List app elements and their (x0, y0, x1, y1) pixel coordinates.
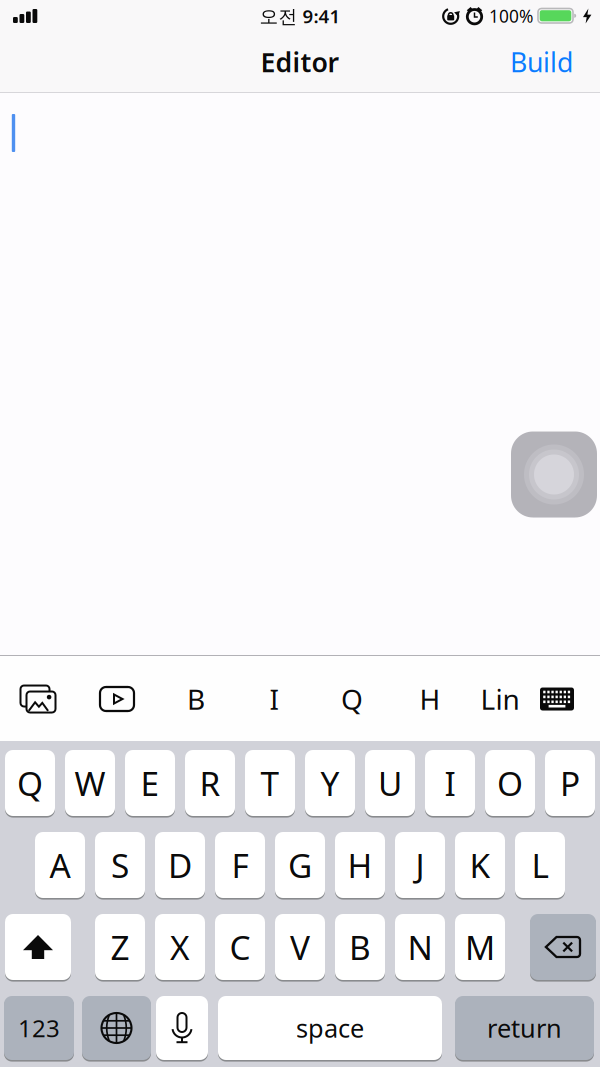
button[interactable]: Insert video (95, 669, 139, 729)
button[interactable]: H (335, 832, 385, 898)
button[interactable]: W (65, 750, 115, 816)
staticText: W (74, 761, 105, 805)
button[interactable]: Z (95, 914, 145, 980)
button[interactable]: O (485, 750, 535, 816)
button[interactable]: C (215, 914, 265, 980)
staticText: I (269, 680, 278, 718)
button[interactable]: D (155, 832, 205, 898)
button[interactable]: Insert photo (16, 669, 60, 729)
button[interactable]: Numbers (4, 996, 74, 1060)
staticText: Q (341, 680, 363, 718)
staticText: U (378, 761, 402, 805)
button[interactable]: X (155, 914, 205, 980)
button[interactable]: B (335, 914, 385, 980)
staticText: B (349, 925, 371, 969)
button[interactable]: F (215, 832, 265, 898)
button[interactable]: return (455, 996, 594, 1060)
button[interactable]: M (455, 914, 505, 980)
button[interactable]: K (455, 832, 505, 898)
staticText: H (419, 680, 440, 718)
staticText: Editor (260, 44, 339, 80)
staticText: M (465, 925, 495, 969)
staticText: Q (17, 761, 43, 805)
staticText: Lin (480, 680, 519, 718)
button[interactable]: Italic (252, 669, 296, 729)
button[interactable]: T (245, 750, 295, 816)
button[interactable]: U (365, 750, 415, 816)
button[interactable]: G (275, 832, 325, 898)
staticText: K (469, 843, 490, 887)
staticText: G (288, 843, 312, 887)
button[interactable]: Shift (5, 914, 71, 980)
staticText: 100% (489, 4, 533, 27)
staticText: D (168, 843, 192, 887)
button[interactable]: J (395, 832, 445, 898)
staticText: S (111, 843, 129, 887)
staticText: Build (510, 44, 573, 80)
staticText: T (260, 761, 279, 805)
staticText: 오전 9:41 (259, 4, 340, 28)
staticText: Y (320, 761, 339, 805)
staticText: J (415, 843, 424, 887)
button[interactable]: E (125, 750, 175, 816)
staticText: H (347, 843, 372, 887)
button[interactable]: Bold (174, 669, 218, 729)
staticText: return (487, 1011, 562, 1045)
staticText: X (170, 925, 190, 969)
staticText: B (187, 680, 205, 718)
staticText: V (290, 925, 310, 969)
staticText: L (531, 843, 548, 887)
button[interactable]: S (95, 832, 145, 898)
button[interactable]: L (515, 832, 565, 898)
button[interactable]: Y (305, 750, 355, 816)
staticText: C (229, 925, 250, 969)
button[interactable]: Quote (330, 669, 374, 729)
staticText: Z (110, 925, 129, 969)
staticText: P (560, 761, 580, 805)
button[interactable]: Dismiss keyboard (535, 669, 579, 729)
button[interactable]: AssistiveTouch menu (511, 431, 597, 517)
button[interactable]: R (185, 750, 235, 816)
button[interactable]: Dictate (156, 996, 208, 1060)
staticText: E (140, 761, 159, 805)
button[interactable]: A (35, 832, 85, 898)
staticText: R (199, 761, 220, 805)
staticText: N (407, 925, 432, 969)
button[interactable]: Q (5, 750, 55, 816)
staticText: F (231, 843, 248, 887)
button[interactable]: space (218, 996, 442, 1060)
staticText: 123 (18, 1012, 60, 1044)
button[interactable]: N (395, 914, 445, 980)
button[interactable]: Build (510, 44, 573, 80)
button[interactable]: V (275, 914, 325, 980)
button[interactable]: I (425, 750, 475, 816)
staticText: space (296, 1011, 364, 1045)
staticText: I (444, 761, 455, 805)
button[interactable]: Delete (530, 914, 596, 980)
button[interactable]: Next keyboard (82, 996, 151, 1060)
staticText: A (49, 843, 70, 887)
button[interactable]: Heading (408, 669, 452, 729)
button[interactable]: Link (471, 669, 529, 729)
button[interactable]: P (545, 750, 595, 816)
staticText: O (497, 761, 523, 805)
